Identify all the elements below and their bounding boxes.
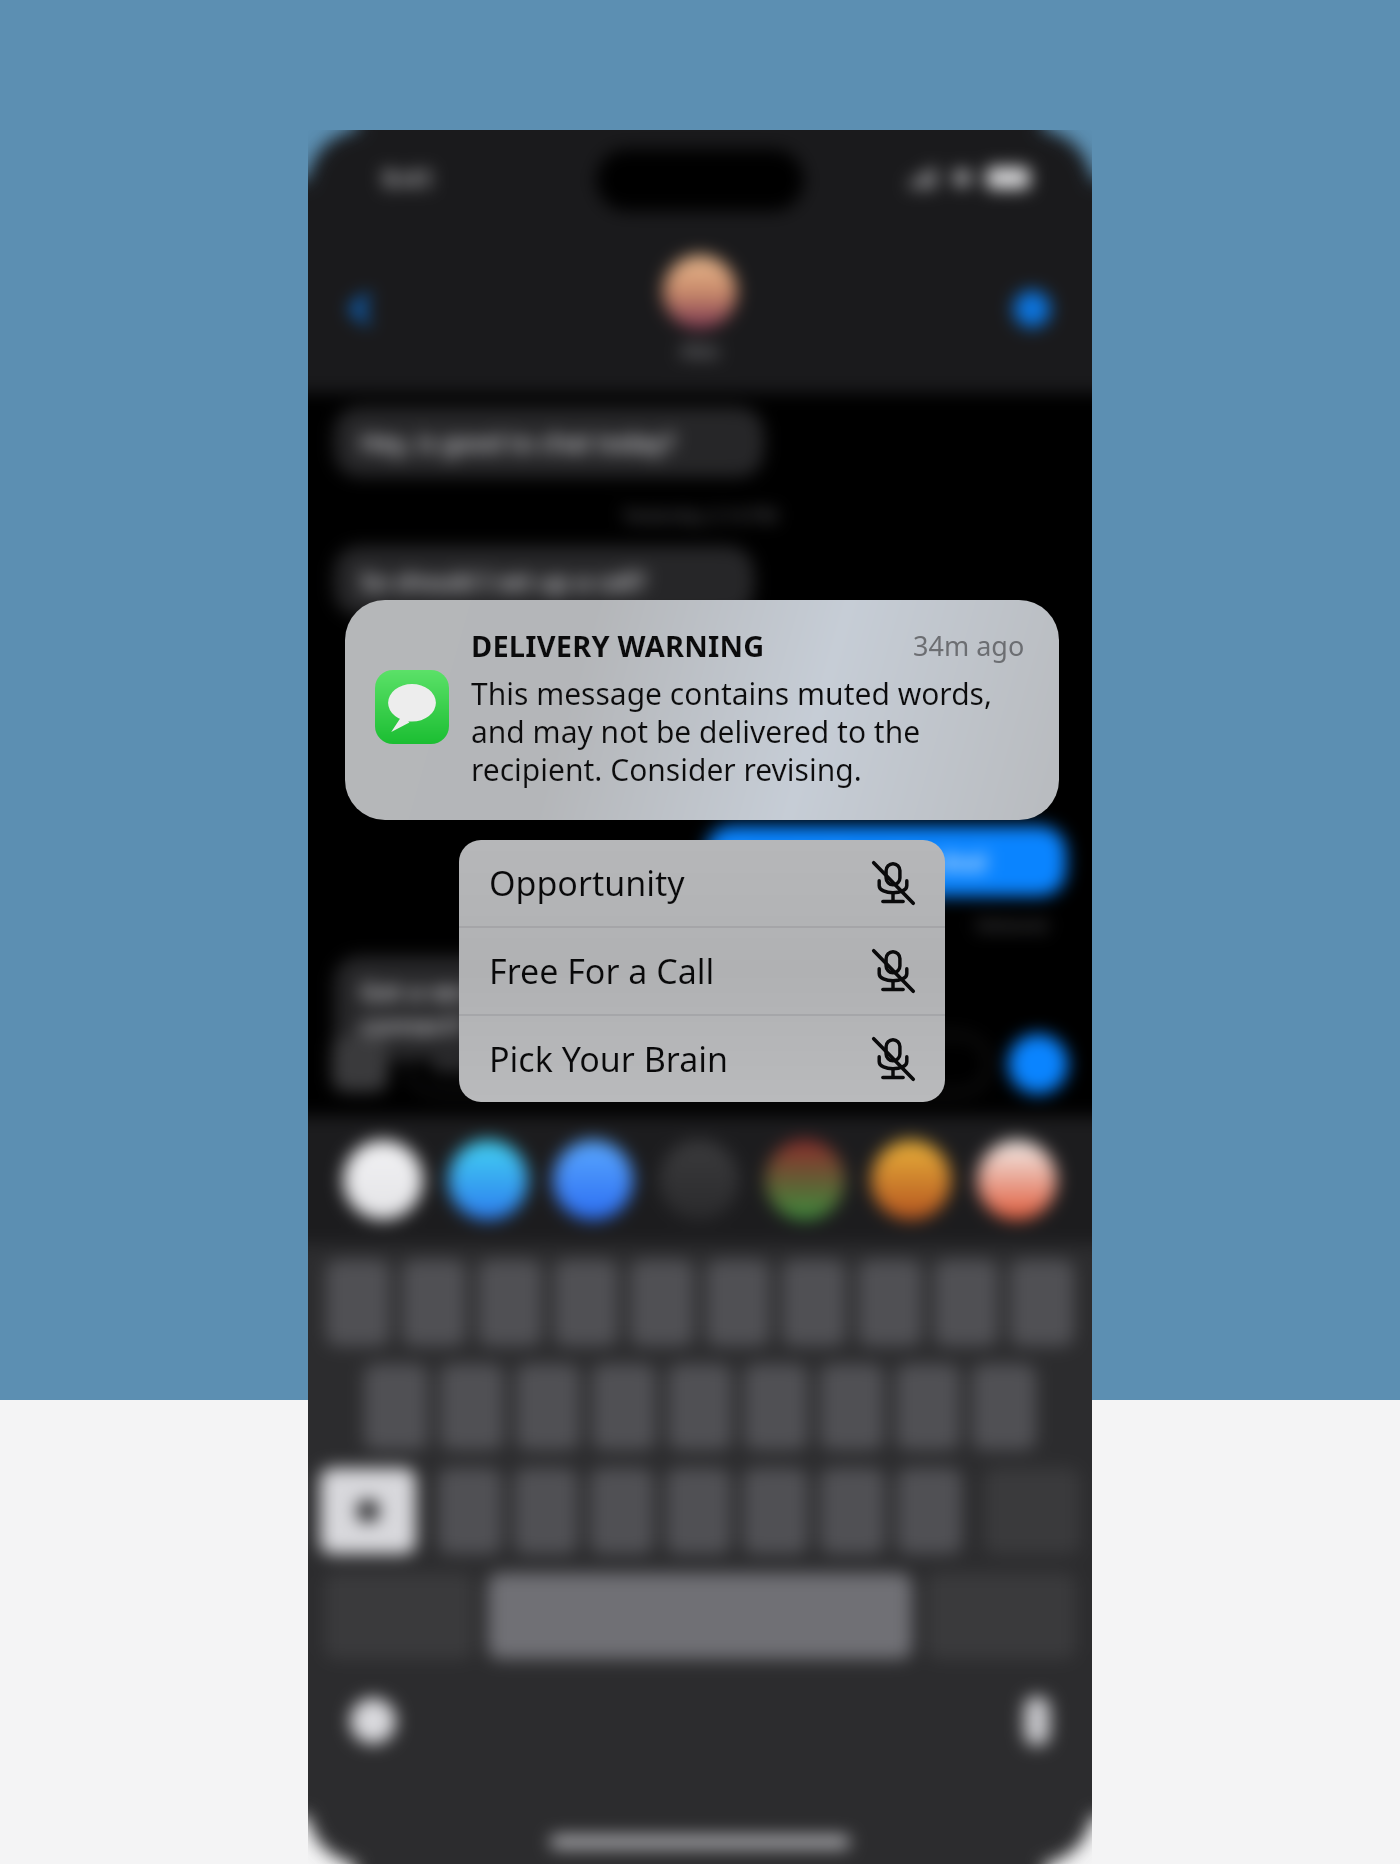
staticText: This message contains muted words, and m…	[471, 673, 1025, 790]
other: Muted word: Free For a Call	[867, 945, 919, 997]
button[interactable]: DELIVERY WARNING	[345, 600, 1059, 820]
staticText: So should I set up a call?	[360, 564, 646, 598]
staticText: Free For a Call	[489, 948, 715, 994]
staticText: iMessage	[432, 1049, 530, 1079]
staticText: Sounds like a big deal	[732, 844, 987, 878]
staticText: Hey, is good to chat today?	[360, 425, 675, 459]
staticText: Yesterday 2:14 PM	[308, 503, 1092, 528]
staticText: 9:41	[382, 160, 434, 195]
other: Muted word: Pick Your Brain	[867, 1033, 919, 1085]
staticText: Alex	[680, 337, 720, 364]
button[interactable]: Opportunity	[459, 840, 945, 926]
staticText: Pick Your Brain	[489, 1036, 728, 1082]
button[interactable]: Pick Your Brain	[459, 1016, 945, 1102]
other: Muted word: Opportunity	[867, 857, 919, 909]
staticText: 34m ago	[913, 627, 1025, 664]
staticText: DELIVERY WARNING	[471, 626, 765, 665]
button[interactable]: Free For a Call	[459, 928, 945, 1014]
staticText: Opportunity	[489, 860, 685, 906]
staticText: Got a sec to connect?	[360, 974, 499, 1042]
